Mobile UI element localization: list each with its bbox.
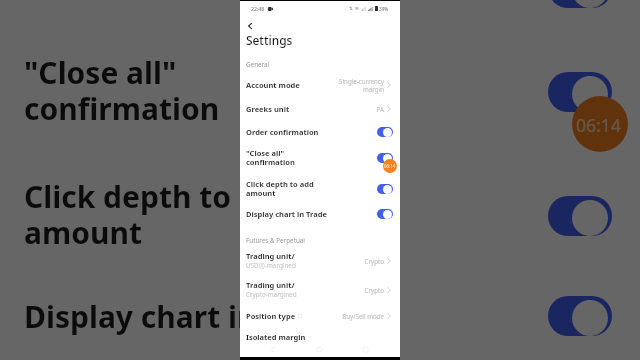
- button[interactable]: Isolated margin: [240, 325, 400, 348]
- button[interactable]: Greeks unit: [240, 97, 400, 120]
- button[interactable]: Toggle setting: [548, 72, 612, 112]
- staticText: "Close all" confirmation: [246, 148, 295, 167]
- button[interactable]: Home: [316, 346, 323, 353]
- button[interactable]: Toggle setting: [377, 209, 393, 219]
- button[interactable]: Recording timer: [383, 159, 397, 173]
- button[interactable]: Toggle setting: [548, 296, 612, 336]
- staticText: margin: [363, 85, 384, 93]
- staticText: 22:48: [251, 5, 265, 12]
- button[interactable]: Order confirmation: [240, 120, 400, 143]
- staticText: Settings: [246, 32, 293, 48]
- staticText: Trading unit/: [246, 251, 295, 261]
- staticText: Display chart in Trade: [24, 296, 348, 336]
- button[interactable]: Recording timer: [572, 96, 628, 152]
- button[interactable]: Toggle setting: [377, 153, 393, 163]
- staticText: ✉: [355, 6, 359, 11]
- staticText: Click depth to add amount: [24, 176, 296, 252]
- staticText: USDⒶ-margined: [246, 261, 296, 270]
- staticText: Click depth to add amount: [246, 179, 314, 198]
- button[interactable]: Trading unit/: [240, 274, 400, 305]
- staticText: ⇅: [349, 6, 353, 11]
- staticText: Position type: [246, 311, 296, 321]
- button[interactable]: Display chart in Trade: [0, 268, 640, 360]
- staticText: Isolated margin: [246, 332, 306, 342]
- staticText: Crypto: [364, 286, 384, 294]
- staticText: Order confirmation: [24, 0, 316, 8]
- staticText: Crypto: [364, 257, 384, 265]
- button[interactable]: Back: [244, 20, 255, 31]
- staticText: Buy/Sell mode: [342, 312, 384, 320]
- button[interactable]: Toggle setting: [377, 184, 393, 194]
- staticText: Single-currency: [339, 77, 384, 85]
- button[interactable]: Recents: [362, 346, 369, 353]
- staticText: PA: [376, 105, 384, 113]
- staticText: General: [246, 60, 270, 69]
- staticText: Greeks unit: [246, 104, 290, 114]
- button[interactable]: Back: [269, 346, 276, 353]
- button[interactable]: "Close all" confirmation: [0, 28, 640, 152]
- staticText: 39%: [379, 6, 389, 12]
- staticText: 06:14: [576, 112, 624, 136]
- button[interactable]: Click depth to add amount: [0, 152, 640, 276]
- button[interactable]: Trading unit/: [240, 245, 400, 276]
- button[interactable]: Toggle setting: [548, 196, 612, 236]
- staticText: Display chart in Trade: [246, 209, 327, 219]
- button[interactable]: Order confirmation: [0, 0, 640, 32]
- staticText: "Close all" confirmation: [24, 52, 220, 128]
- button[interactable]: Toggle setting: [548, 0, 612, 8]
- button[interactable]: "Close all" confirmation: [240, 142, 400, 173]
- button[interactable]: Click depth to add amount: [240, 173, 400, 204]
- button[interactable]: Position type: [240, 304, 400, 327]
- button[interactable]: Toggle setting: [377, 127, 393, 137]
- staticText: Order confirmation: [246, 127, 319, 137]
- staticText: Account mode: [246, 80, 300, 90]
- button[interactable]: Account mode: [240, 73, 400, 96]
- staticText: Trading unit/: [246, 280, 295, 290]
- staticText: Crypto-margined: [246, 290, 297, 299]
- button[interactable]: Display chart in Trade: [240, 202, 400, 225]
- staticText: 06:14: [384, 163, 396, 169]
- staticText: Futures & Perpetual: [246, 236, 305, 245]
